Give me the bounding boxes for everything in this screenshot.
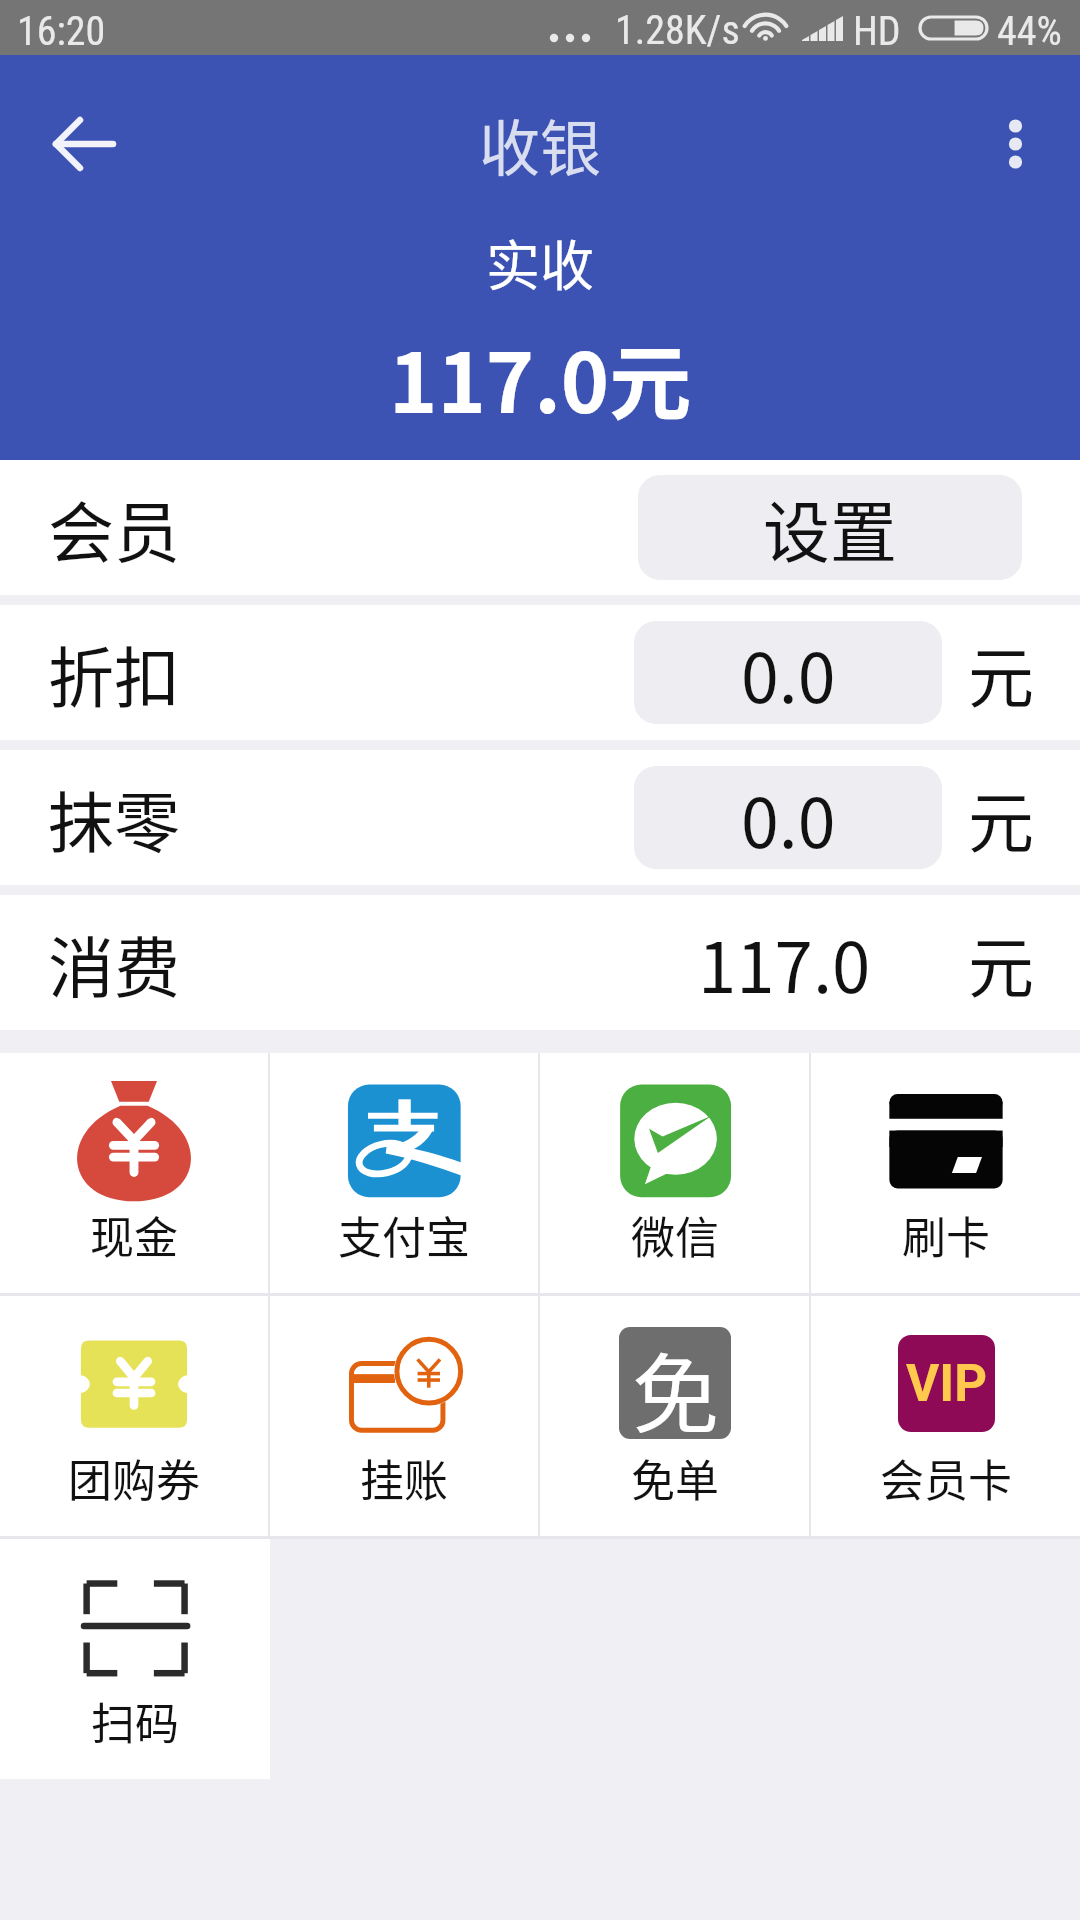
staticText: 设置 <box>763 479 897 576</box>
button[interactable]: 会员 <box>0 460 1080 595</box>
button[interactable]: 现金 <box>0 1053 268 1293</box>
staticText: 扫码 <box>91 1689 179 1753</box>
staticText: HD <box>853 8 901 55</box>
staticText: 挂账 <box>360 1446 448 1510</box>
staticText: 会员 <box>48 480 180 576</box>
button[interactable]: 0.0 <box>634 766 942 869</box>
button[interactable]: More options <box>970 94 1060 194</box>
button[interactable]: 团购券 <box>0 1296 268 1536</box>
button[interactable]: 免 <box>540 1296 809 1536</box>
button[interactable]: 微信 <box>540 1053 809 1293</box>
staticText: 1.28K/s <box>615 7 740 54</box>
staticText: 117.0元 <box>389 318 692 437</box>
button[interactable]: Back <box>20 94 120 194</box>
button[interactable]: 0.0 <box>634 621 942 724</box>
button[interactable]: 刷卡 <box>811 1053 1080 1293</box>
staticText: 0.0 <box>741 769 836 867</box>
staticText: 0.0 <box>741 624 836 722</box>
staticText: VIP <box>906 1354 988 1414</box>
staticText: 117.0 <box>698 913 871 1013</box>
staticText: 免 <box>632 1327 719 1438</box>
staticText: 44% <box>997 8 1062 55</box>
staticText: 支付宝 <box>338 1203 470 1267</box>
button[interactable]: 折扣 <box>0 605 1080 740</box>
staticText: 收银 <box>479 100 602 188</box>
staticText: 元 <box>968 770 1034 866</box>
staticText: 现金 <box>90 1203 178 1267</box>
staticText: 抹零 <box>48 770 180 866</box>
button[interactable]: 挂账 <box>270 1296 538 1536</box>
staticText: 实收 <box>486 223 594 301</box>
button[interactable]: 支付宝 <box>270 1053 538 1293</box>
button[interactable]: 抹零 <box>0 750 1080 885</box>
staticText: 消费 <box>48 915 180 1011</box>
staticText: 元 <box>968 915 1034 1011</box>
button[interactable]: 扫码 <box>0 1539 270 1779</box>
staticText: 微信 <box>631 1203 719 1267</box>
button[interactable]: VIP <box>811 1296 1080 1536</box>
staticText: 团购券 <box>68 1446 200 1510</box>
staticText: 免单 <box>631 1446 719 1510</box>
button[interactable]: 消费 <box>0 895 1080 1030</box>
button[interactable]: 设置 <box>638 475 1022 580</box>
staticText: 元 <box>968 625 1034 721</box>
staticText: 16:20 <box>17 8 106 55</box>
staticText: 折扣 <box>48 625 180 721</box>
staticText: 刷卡 <box>902 1203 990 1267</box>
staticText: 会员卡 <box>880 1446 1012 1510</box>
